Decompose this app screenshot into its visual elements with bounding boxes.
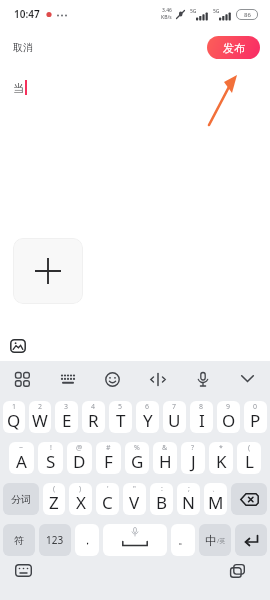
staticText: V (129, 491, 140, 514)
staticText: X (76, 491, 86, 514)
staticText: 5G (190, 8, 197, 15)
staticText: 4 (91, 402, 96, 412)
staticText: R (88, 409, 99, 432)
staticText: ， (82, 533, 93, 547)
staticText: ? (191, 443, 195, 453)
staticText: 123 (46, 533, 64, 547)
staticText: 7 (172, 402, 177, 412)
staticText: ! (50, 443, 52, 453)
staticText: 6 (145, 402, 150, 412)
staticText: Q (7, 409, 21, 432)
staticText: K (216, 450, 227, 473)
staticText: 5G (213, 8, 220, 15)
staticText: 1 (12, 402, 17, 412)
staticText: 、 (212, 484, 219, 493)
staticText: L (245, 450, 254, 473)
staticText: J (191, 450, 196, 473)
staticText: ) (79, 484, 82, 494)
staticText: O (222, 409, 236, 432)
staticText: 分词 (11, 493, 31, 506)
staticText: ( (248, 443, 251, 453)
staticText: 2 (38, 402, 43, 412)
staticText: 符 (14, 534, 24, 547)
staticText: G (131, 450, 144, 473)
staticText: : (161, 484, 163, 494)
staticText: Z (49, 491, 59, 514)
staticText: 8 (199, 402, 204, 412)
staticText: I (199, 409, 205, 432)
staticText: C (102, 491, 113, 514)
staticText: KB/s (161, 14, 172, 21)
staticText: E (62, 409, 72, 432)
staticText: @ (76, 443, 83, 453)
staticText: H (159, 450, 172, 473)
staticText: 9 (226, 402, 231, 412)
staticText: P (250, 409, 261, 432)
staticText: F (104, 450, 113, 473)
staticText: B (156, 491, 168, 514)
staticText: & (162, 443, 168, 453)
staticText: ' (107, 484, 109, 494)
staticText: A (16, 450, 27, 473)
staticText: U (168, 409, 181, 432)
staticText: 。 (178, 533, 189, 547)
staticText: 3 (64, 402, 69, 412)
staticText: W (32, 409, 48, 432)
staticText: S (46, 450, 56, 473)
staticText: ; (188, 484, 190, 494)
staticText: 5 (118, 402, 123, 412)
staticText: 10:47 (14, 7, 40, 21)
staticText: 当 (13, 81, 24, 95)
staticText: 取消 (13, 41, 33, 54)
staticText: 中 (205, 533, 217, 548)
staticText: 3.46 (162, 7, 172, 14)
staticText: 0 (253, 402, 258, 412)
staticText: 86 (244, 11, 251, 19)
staticText: N (182, 491, 195, 514)
staticText: ~ (19, 443, 24, 453)
staticText: Y (143, 409, 153, 432)
staticText: /英 (217, 537, 226, 545)
staticText: % (134, 443, 140, 453)
staticText: * (219, 443, 223, 453)
staticText: D (73, 450, 86, 473)
staticText: 发布 (223, 41, 245, 55)
staticText: T (116, 409, 126, 432)
staticText: " (133, 484, 136, 494)
staticText: # (106, 443, 111, 453)
staticText: ( (53, 484, 56, 494)
staticText: M (208, 491, 224, 514)
